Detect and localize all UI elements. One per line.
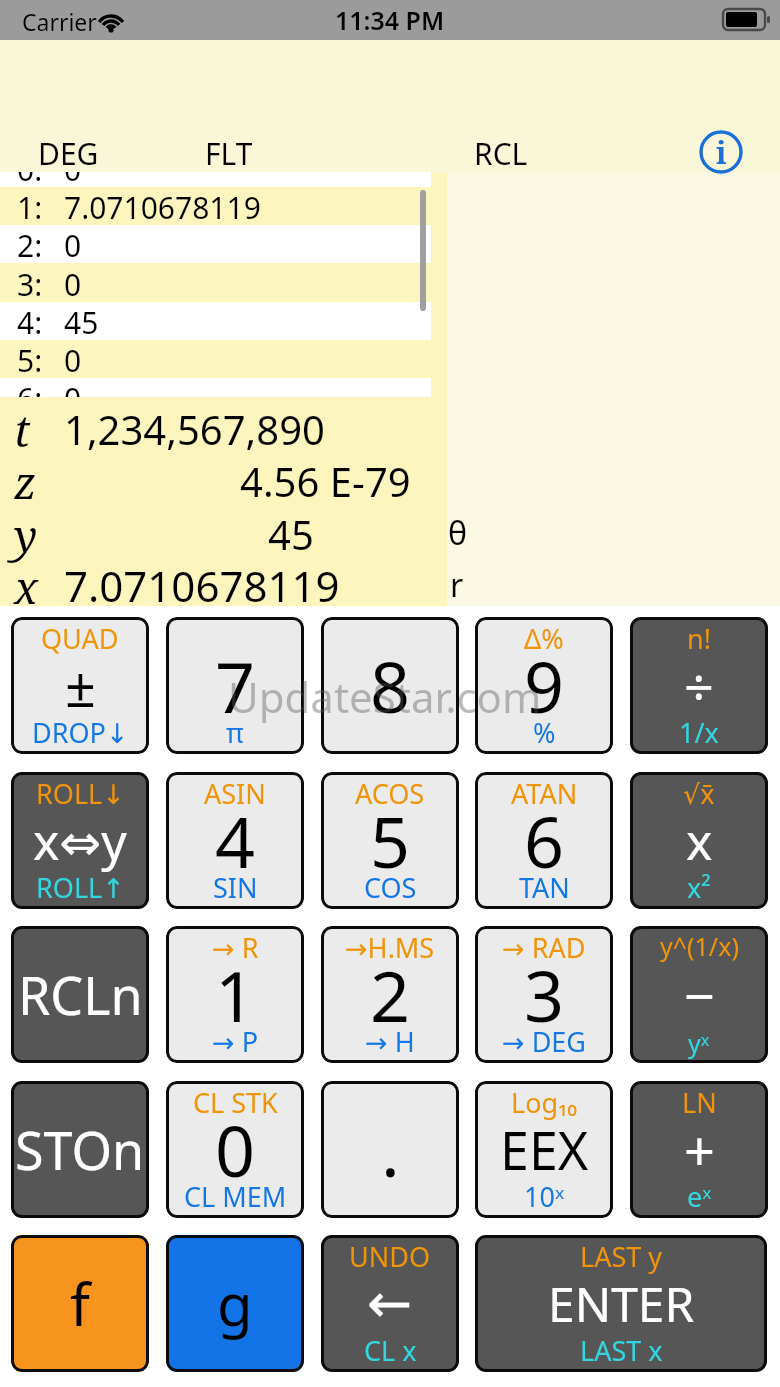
staticText: 0 [64,340,82,378]
button[interactable]: 7 [166,617,304,754]
button[interactable]: → R [166,926,304,1063]
staticText: − [684,958,715,1032]
button[interactable]: UNDO [321,1235,459,1372]
staticText: LAST x [580,1332,663,1369]
staticText: 0 [215,1102,256,1197]
staticText: UpdateStar.com [228,668,542,725]
button[interactable]: 8 [321,617,459,754]
staticText: ATAN [511,775,578,812]
button[interactable]: Log₁₀ [475,1081,613,1218]
staticText: LAST y [580,1238,663,1275]
staticText: FLT [205,133,253,174]
staticText: Log₁₀ [511,1084,577,1121]
staticText: 0 [64,264,82,302]
staticText: ÷ [684,650,714,721]
staticText: ASIN [204,775,266,812]
staticText: DROP↓ [32,714,129,751]
staticText: 8 [370,638,411,733]
staticText: f [70,1264,90,1343]
staticText: 45 [268,507,314,561]
button[interactable]: g [166,1235,304,1372]
staticText: 4 [215,793,256,888]
staticText: i [716,132,727,173]
staticText: → H [365,1023,415,1060]
staticText: TAN [519,869,570,906]
button[interactable]: √x̄ [630,772,768,909]
staticText: CL MEM [184,1178,287,1215]
staticText: n! [687,620,711,657]
button[interactable]: 0: [0,172,447,187]
staticText: 3 [524,947,565,1042]
staticText: 45 [64,302,99,340]
staticText: ENTER [548,1271,695,1336]
staticText: 1/x [679,714,719,751]
button[interactable]: Δ% [475,617,613,754]
staticText: ± [65,649,96,723]
staticText: 0 [64,378,82,397]
staticText: x² [687,869,711,906]
button[interactable]: y^(1/x) [630,926,768,1063]
button[interactable]: n! [630,617,768,754]
staticText: 0: [17,172,43,187]
button[interactable]: 6: [0,378,447,397]
button[interactable]: LN [630,1081,768,1218]
staticText: → P [212,1023,258,1060]
staticText: 5: [17,340,43,378]
staticText: θ [448,511,468,555]
staticText: . [381,1102,400,1197]
staticText: 1,234,567,890 [64,402,325,456]
button[interactable]: 3: [0,264,447,302]
staticText: % [533,714,556,751]
staticText: UNDO [349,1238,431,1275]
staticText: 1: [17,187,43,225]
staticText: → R [212,929,259,966]
staticText: COS [364,869,417,906]
button[interactable]: STOn [11,1081,149,1218]
staticText: 6: [17,378,43,397]
button[interactable]: 4: [0,302,447,340]
staticText: 0 [64,225,82,263]
staticText: SIN [213,869,258,906]
staticText: 10ˣ [524,1178,565,1215]
staticText: π [226,714,244,751]
button[interactable]: f [11,1235,149,1372]
staticText: 4.56 E-79 [240,454,411,508]
staticText: √x̄ [683,775,715,812]
button[interactable]: ASIN [166,772,304,909]
staticText: ROLL↑ [36,869,125,906]
button[interactable]: . [321,1081,459,1218]
button[interactable]: 1: [0,187,447,225]
button[interactable]: RCLn [11,926,149,1063]
staticText: CL x [364,1332,417,1369]
button[interactable]: i [699,130,743,174]
staticText: ROLL↓ [36,775,125,812]
staticText: 2 [370,947,411,1042]
button[interactable]: LAST y [475,1235,767,1372]
staticText: 5 [370,793,411,888]
staticText: QUAD [41,620,119,657]
button[interactable]: 5: [0,340,447,378]
staticText: 4: [17,302,43,340]
button[interactable]: 2: [0,225,447,263]
button[interactable]: →H.MS [321,926,459,1063]
button[interactable]: ROLL↓ [11,772,149,909]
staticText: → RAD [502,929,586,966]
button[interactable]: CL STK [166,1081,304,1218]
staticText: Δ% [524,620,564,657]
button[interactable]: ACOS [321,772,459,909]
staticText: z [14,452,37,512]
staticText: + [684,1113,715,1187]
staticText: RCLn [18,959,143,1030]
button[interactable]: → RAD [475,926,613,1063]
staticText: Carrier [22,6,97,37]
staticText: y [14,505,38,565]
staticText: 3: [17,264,43,302]
button[interactable]: ATAN [475,772,613,909]
staticText: x⇔y [33,807,127,875]
staticText: 1 [215,947,256,1042]
staticText: ← [367,1272,413,1335]
staticText: y^(1/x) [660,929,739,963]
staticText: 0 [64,172,82,187]
button[interactable]: QUAD [11,617,149,754]
staticText: →H.MS [345,929,435,966]
